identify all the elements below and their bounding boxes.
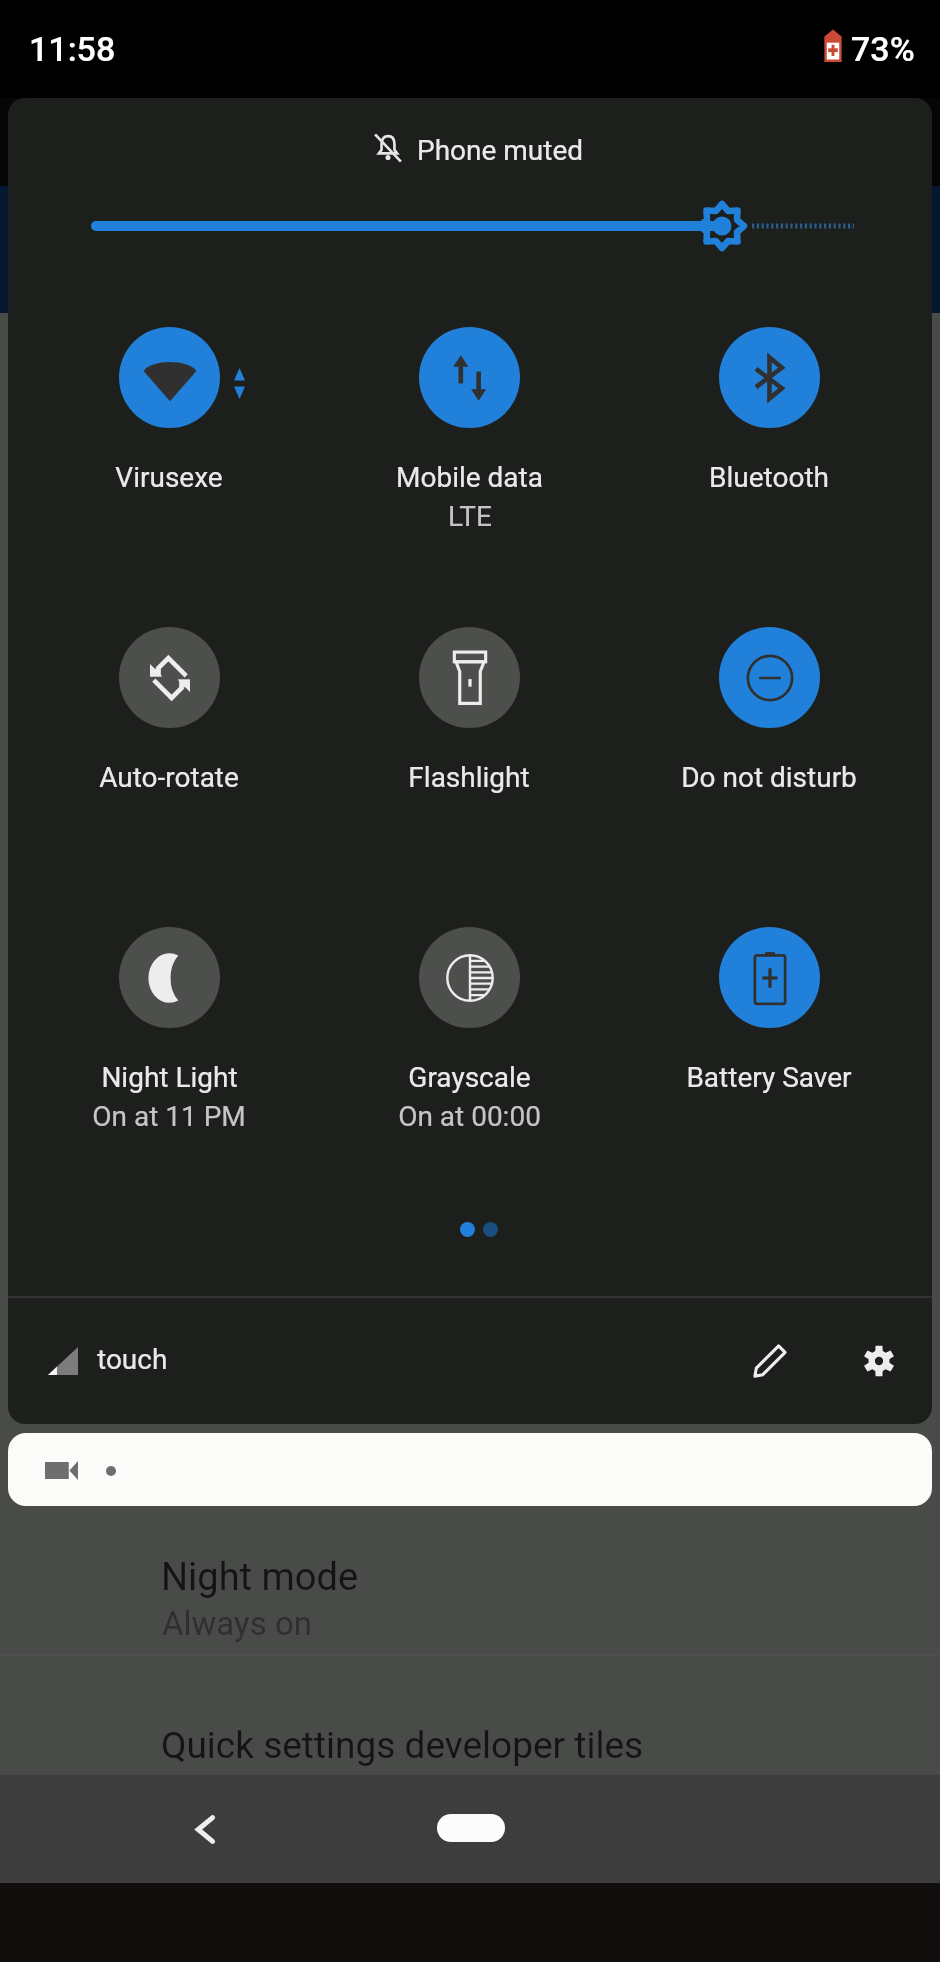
staticText: Auto-rotate — [99, 761, 239, 794]
button[interactable]: Battery Saver — [619, 927, 919, 1163]
staticText: Night mode — [161, 1555, 359, 1600]
button[interactable]: Edit tiles — [730, 1321, 810, 1401]
button[interactable]: Settings — [839, 1321, 919, 1401]
staticText: Battery Saver — [686, 1061, 852, 1094]
staticText: touch — [97, 1343, 168, 1376]
staticText: On at 11 PM — [92, 1100, 246, 1133]
button[interactable]: Home — [437, 1814, 505, 1842]
button[interactable]: Virusexe — [19, 327, 319, 563]
staticText: Always on — [162, 1604, 312, 1643]
staticText: On at 00:00 — [398, 1100, 541, 1133]
staticText: LTE — [448, 500, 492, 533]
staticText: Bluetooth — [709, 461, 829, 494]
staticText: Virusexe — [115, 461, 223, 494]
staticText: Grayscale — [408, 1061, 531, 1094]
staticText: 11:58 — [29, 29, 116, 69]
button[interactable]: Do not disturb — [619, 627, 919, 863]
button[interactable]: Flashlight — [319, 627, 619, 863]
button[interactable]: Night Light — [19, 927, 319, 1163]
staticText: 73% — [851, 29, 915, 69]
staticText: Do not disturb — [681, 761, 857, 794]
button[interactable]: Grayscale — [319, 927, 619, 1163]
staticText: Flashlight — [408, 761, 530, 794]
button[interactable]: Mobile data — [319, 327, 619, 563]
staticText: Phone muted — [417, 134, 584, 167]
staticText: Mobile data — [396, 461, 543, 494]
button[interactable]: Auto-rotate — [19, 627, 319, 863]
button[interactable]: Back — [168, 1775, 242, 1883]
button[interactable]: Bluetooth — [619, 327, 919, 563]
staticText: Night Light — [101, 1061, 238, 1094]
staticText: Quick settings developer tiles — [161, 1724, 644, 1767]
button[interactable] — [8, 1433, 932, 1506]
